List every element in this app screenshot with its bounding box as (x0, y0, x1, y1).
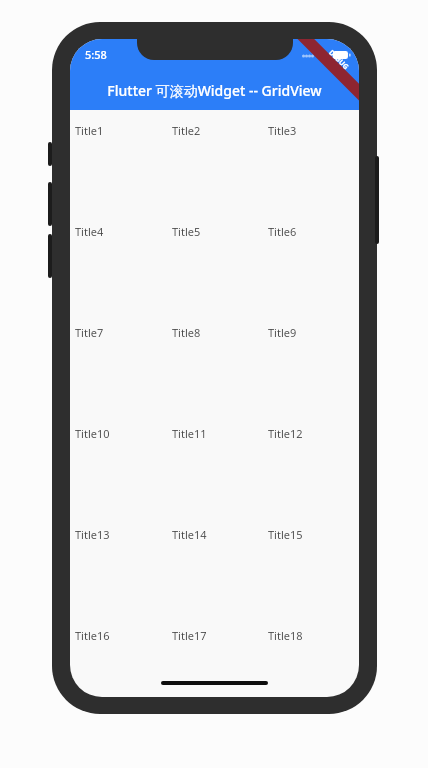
button[interactable]: Title14 (167, 514, 263, 615)
staticText: Title17 (172, 628, 207, 643)
button[interactable]: Title4 (70, 211, 167, 312)
staticText: Title3 (268, 123, 297, 138)
button[interactable]: Title13 (70, 514, 167, 615)
staticText: 5:58 (85, 47, 107, 62)
staticText: Title9 (268, 325, 297, 340)
button[interactable]: Title5 (167, 211, 263, 312)
staticText: Title15 (268, 527, 303, 542)
staticText: Title1 (75, 123, 104, 138)
staticText: Title10 (75, 426, 110, 441)
staticText: Title14 (172, 527, 207, 542)
button[interactable]: Title1 (70, 110, 167, 211)
staticText: Title8 (172, 325, 201, 340)
staticText: Title11 (172, 426, 207, 441)
staticText: Title16 (75, 628, 110, 643)
button[interactable]: Title9 (263, 312, 359, 413)
button[interactable]: Title16 (70, 615, 167, 697)
staticText: Title18 (268, 628, 303, 643)
button[interactable]: Title2 (167, 110, 263, 211)
staticText: Flutter 可滚动Widget -- GridView (70, 81, 359, 100)
staticText: Title13 (75, 527, 110, 542)
button[interactable]: Title11 (167, 413, 263, 514)
staticText: Title5 (172, 224, 201, 239)
staticText: Title7 (75, 325, 104, 340)
button[interactable]: Title6 (263, 211, 359, 312)
button[interactable]: Title10 (70, 413, 167, 514)
staticText: DEBUG (326, 48, 351, 72)
button[interactable]: Title12 (263, 413, 359, 514)
staticText: Title4 (75, 224, 104, 239)
button[interactable]: Title3 (263, 110, 359, 211)
staticText: Title12 (268, 426, 303, 441)
button[interactable]: Title15 (263, 514, 359, 615)
button[interactable]: Title7 (70, 312, 167, 413)
button[interactable]: Title17 (167, 615, 263, 697)
button[interactable]: Title18 (263, 615, 359, 697)
button[interactable]: Title8 (167, 312, 263, 413)
other: Debug banner (295, 39, 359, 103)
staticText: Title2 (172, 123, 201, 138)
staticText: Title6 (268, 224, 297, 239)
